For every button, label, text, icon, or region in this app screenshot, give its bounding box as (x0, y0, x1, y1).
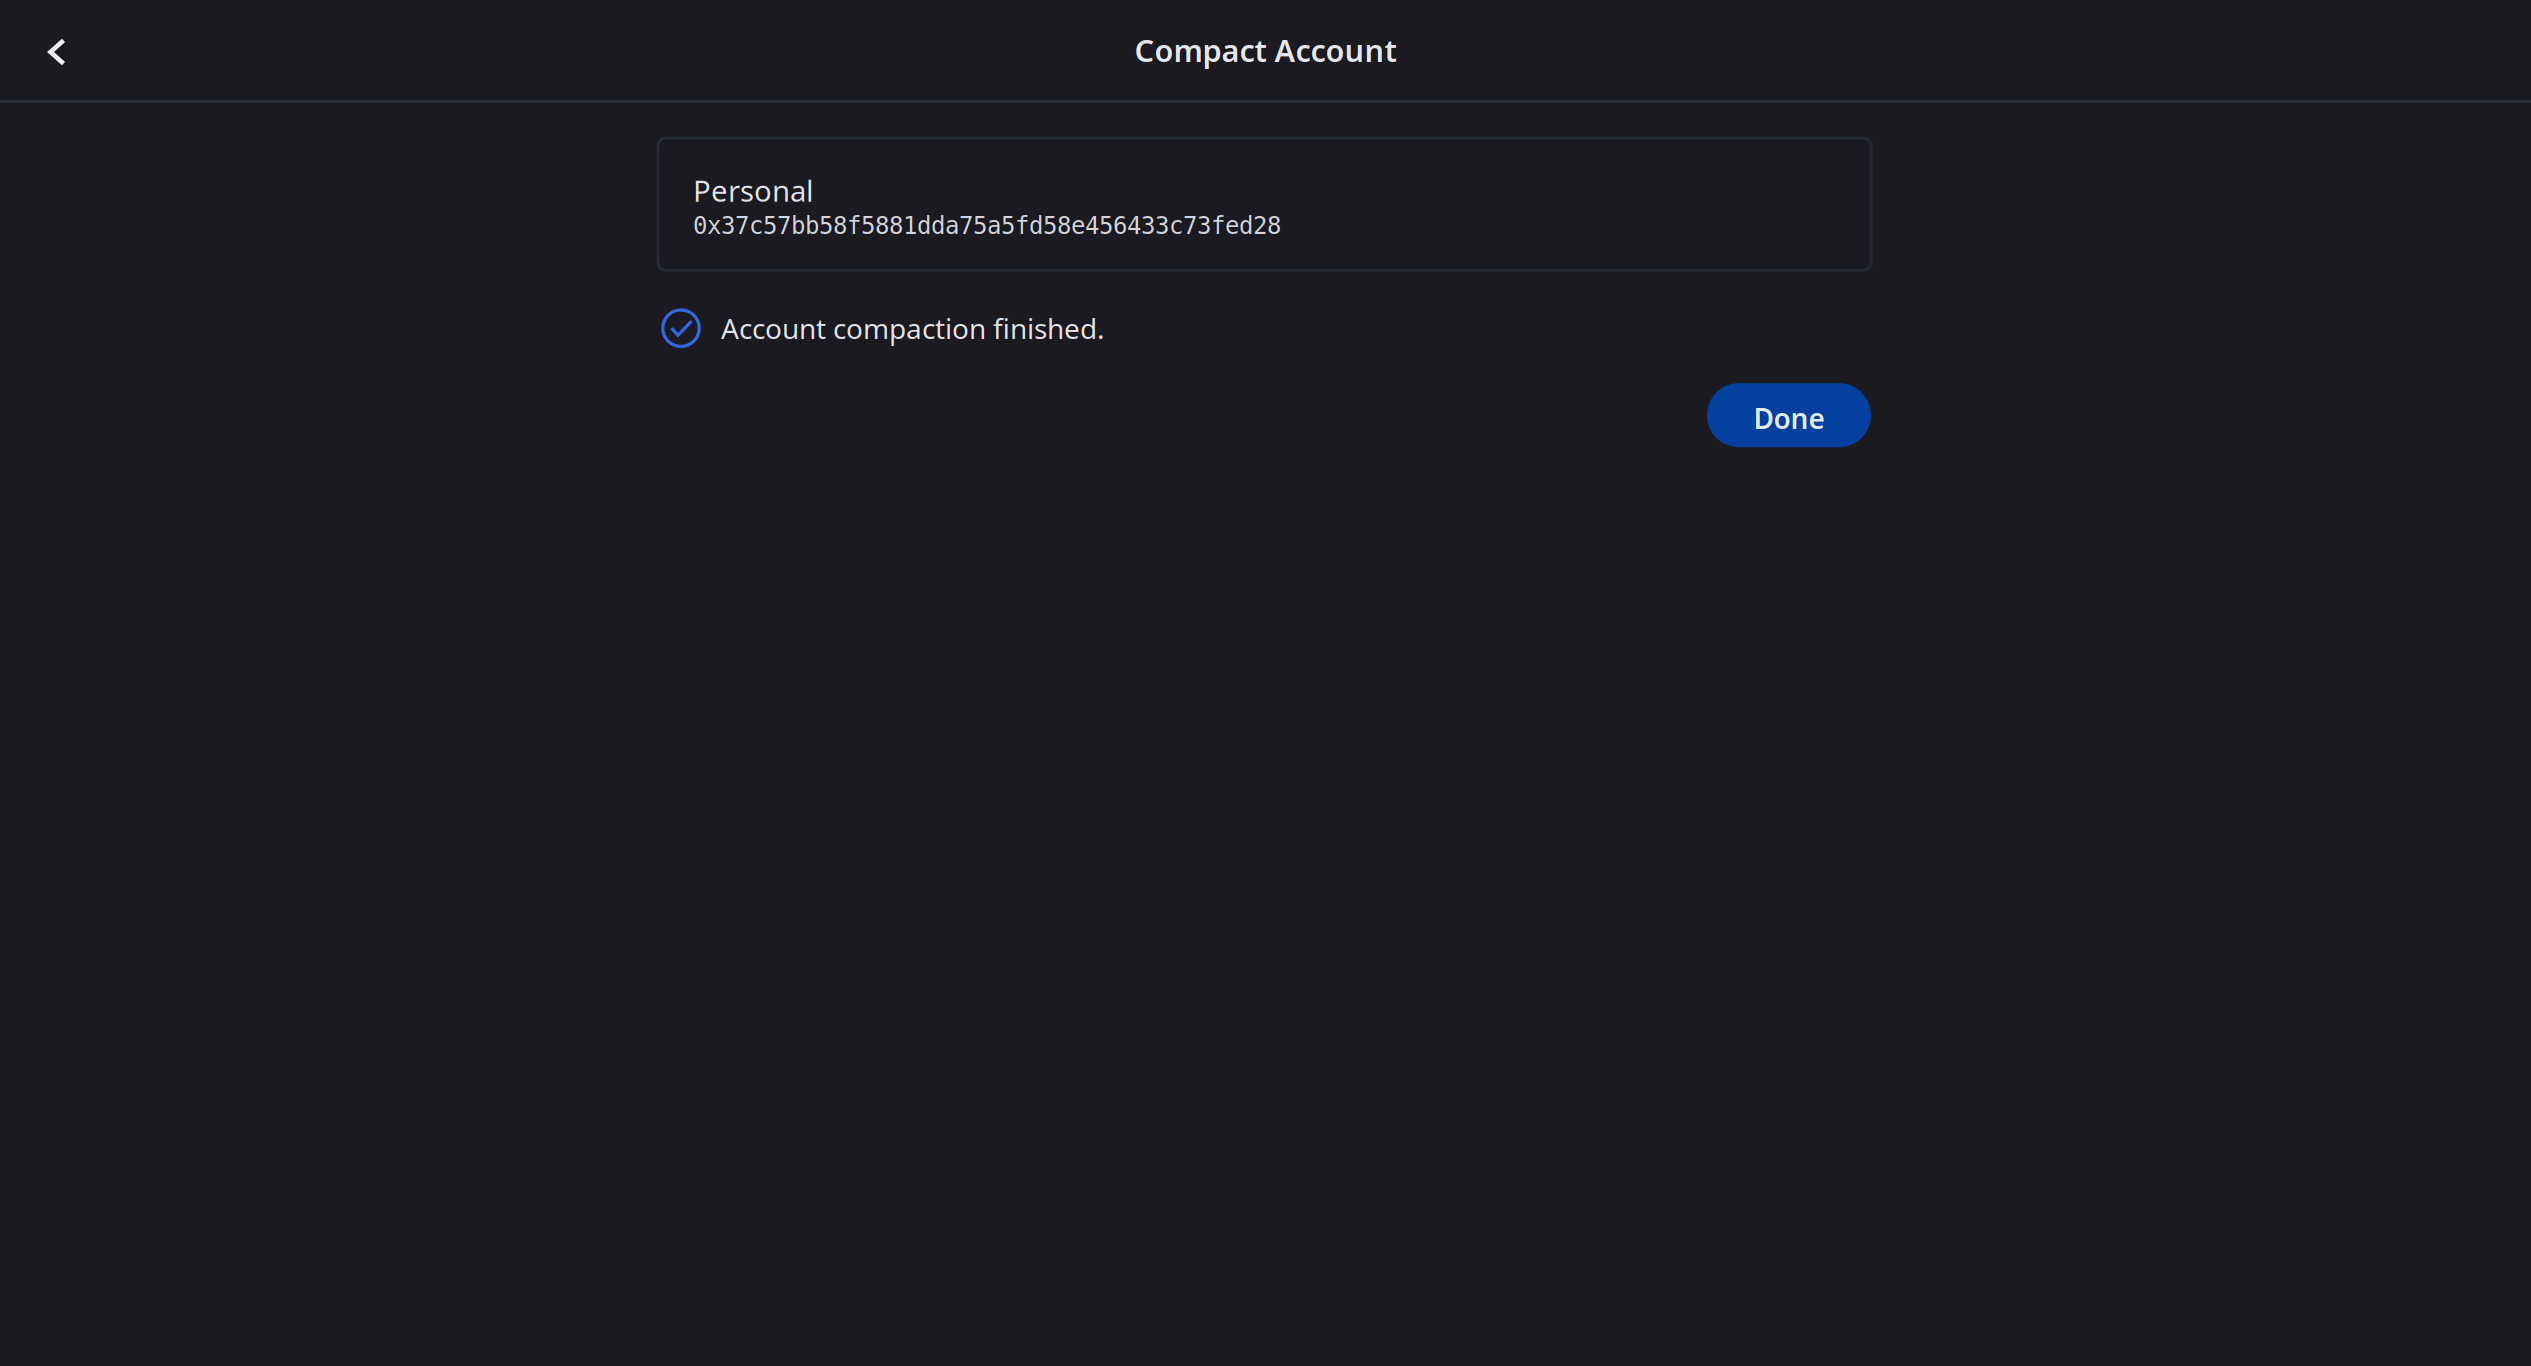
staticText: Personal (693, 171, 814, 210)
button[interactable]: Back (29, 22, 85, 78)
staticText: Done (1753, 400, 1824, 437)
staticText: Account compaction finished. (721, 310, 1105, 347)
staticText: Compact Account (1134, 30, 1396, 70)
staticText: 0x37c57bb58f5881dda75a5fd58e456433c73fed… (693, 212, 1281, 239)
button[interactable]: Done (1707, 383, 1871, 447)
